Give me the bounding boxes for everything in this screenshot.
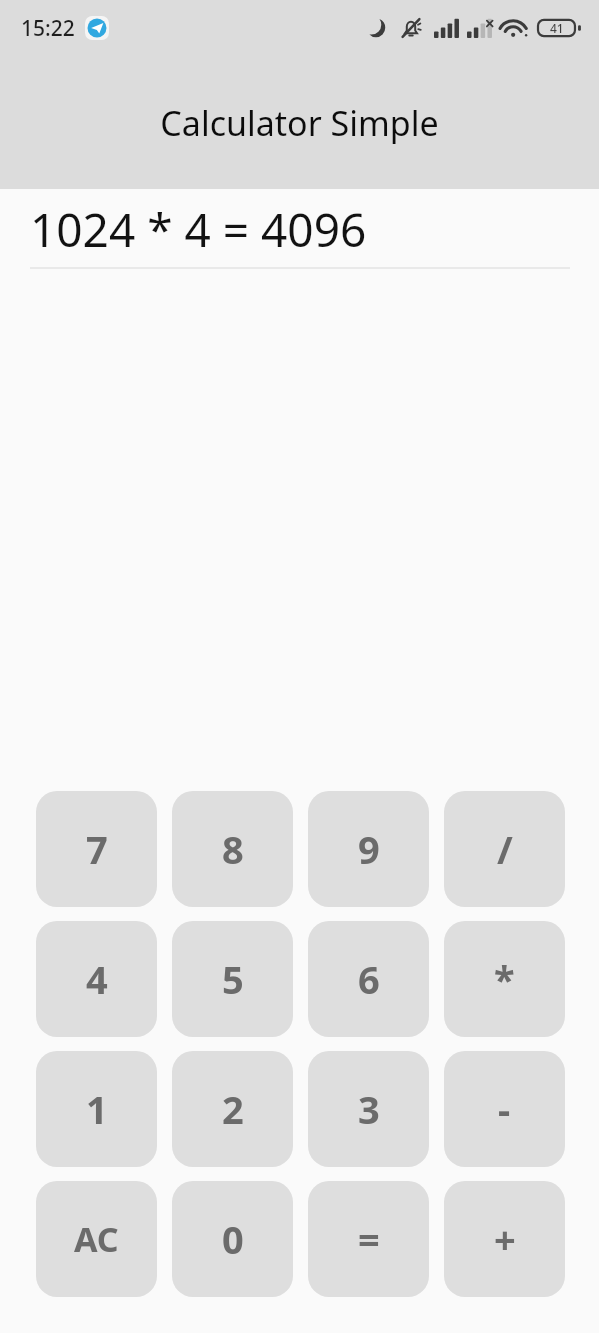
button[interactable]: 7 — [36, 791, 157, 907]
staticText: 3 — [358, 1083, 380, 1135]
staticText: Calculator Simple — [160, 100, 439, 146]
other: Mobile signal unavailable — [467, 18, 492, 38]
button[interactable]: 4 — [36, 921, 157, 1037]
button[interactable]: 9 — [308, 791, 429, 907]
button[interactable]: + — [444, 1181, 565, 1297]
staticText: 0 — [222, 1213, 244, 1265]
button[interactable]: 0 — [172, 1181, 293, 1297]
button[interactable]: 1 — [36, 1051, 157, 1167]
staticText: 15:22 — [21, 14, 75, 43]
staticText: - — [498, 1083, 511, 1135]
staticText: * — [494, 953, 515, 1005]
other: Telegram — [85, 16, 109, 40]
other: Wi-Fi connected — [501, 18, 528, 38]
staticText: AC — [74, 1216, 119, 1262]
button[interactable]: 5 — [172, 921, 293, 1037]
staticText: 1 — [86, 1083, 108, 1135]
staticText: + — [494, 1213, 516, 1265]
staticText: 2 — [222, 1083, 244, 1135]
button[interactable]: 8 — [172, 791, 293, 907]
staticText: 9 — [358, 823, 380, 875]
button[interactable]: = — [308, 1181, 429, 1297]
staticText: 4 — [86, 953, 108, 1005]
button[interactable]: 2 — [172, 1051, 293, 1167]
staticText: 41 — [550, 20, 564, 36]
staticText: 7 — [86, 823, 108, 875]
button[interactable]: - — [444, 1051, 565, 1167]
button[interactable]: 3 — [308, 1051, 429, 1167]
staticText: / — [497, 823, 513, 875]
staticText: 8 — [222, 823, 244, 875]
staticText: 1024 * 4 = 4096 — [30, 198, 367, 261]
button[interactable]: 6 — [308, 921, 429, 1037]
button[interactable]: * — [444, 921, 565, 1037]
other: Ringer muted — [399, 16, 423, 40]
other: Do not disturb — [365, 17, 387, 39]
button[interactable]: AC — [36, 1181, 157, 1297]
other: Battery 41 percent — [538, 17, 582, 39]
staticText: 5 — [222, 953, 244, 1005]
staticText: 6 — [358, 953, 380, 1005]
other: Mobile signal full — [434, 18, 459, 38]
staticText: = — [358, 1213, 380, 1265]
button[interactable]: / — [444, 791, 565, 907]
button[interactable]: 1024 * 4 = 4096 — [30, 198, 570, 269]
